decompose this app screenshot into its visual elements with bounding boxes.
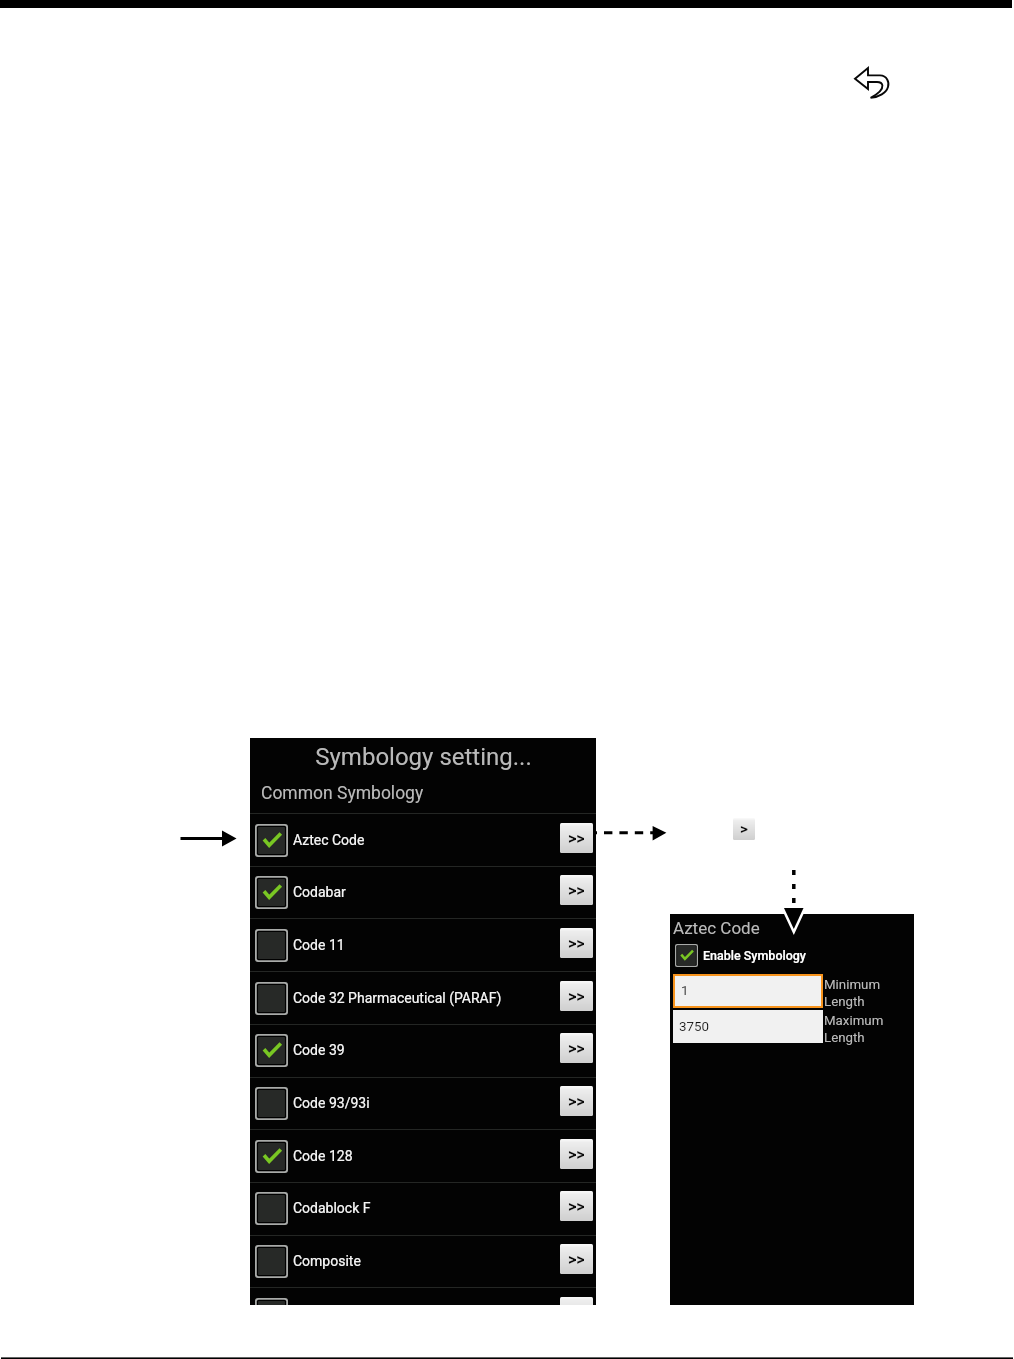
- button[interactable]: More settings: [560, 981, 593, 1011]
- staticText: Symbology setting...: [315, 743, 532, 771]
- button[interactable]: More settings: [560, 823, 593, 853]
- staticText: 3750: [679, 1019, 710, 1035]
- staticText: Codabar: [293, 884, 560, 900]
- button[interactable]: Aztec Code: [250, 814, 596, 866]
- button[interactable]: More settings: [733, 818, 755, 840]
- staticText: Codablock F: [293, 1200, 560, 1216]
- button[interactable]: More settings: [560, 1033, 593, 1063]
- staticText: 1: [681, 983, 689, 999]
- button[interactable]: Enable Symbology: [675, 944, 806, 967]
- button[interactable]: More settings: [560, 928, 593, 958]
- staticText: Code 93/93i: [293, 1095, 560, 1111]
- staticText: >>: [568, 1145, 585, 1164]
- button[interactable]: 1: [675, 976, 821, 1006]
- staticText: Code 39: [293, 1042, 560, 1058]
- staticText: Enable Symbology: [703, 948, 806, 963]
- staticText: >>: [568, 881, 585, 900]
- button[interactable]: More settings: [560, 1139, 593, 1169]
- button[interactable]: Composite: [250, 1235, 596, 1287]
- staticText: >>: [568, 1039, 585, 1058]
- button[interactable]: More settings: [560, 875, 593, 905]
- button[interactable]: Codablock F: [250, 1182, 596, 1234]
- button[interactable]: Code 93/93i: [250, 1077, 596, 1129]
- staticText: Aztec Code: [293, 832, 560, 848]
- button[interactable]: More settings: [560, 1191, 593, 1221]
- staticText: Code 128: [293, 1148, 560, 1164]
- button[interactable]: Code 39: [250, 1024, 596, 1076]
- button[interactable]: More settings: [560, 1086, 593, 1116]
- button[interactable]: Code 128: [250, 1130, 596, 1182]
- staticText: Common Symbology: [261, 783, 424, 804]
- button[interactable]: More settings: [560, 1244, 593, 1274]
- button[interactable]: Data Matrix: [250, 1288, 596, 1305]
- button[interactable]: Undo: [851, 64, 893, 102]
- staticText: Minimum Length: [824, 977, 881, 1009]
- staticText: >>: [568, 1197, 585, 1216]
- staticText: >>: [568, 1250, 585, 1269]
- button[interactable]: Codabar: [250, 866, 596, 918]
- staticText: >>: [568, 934, 585, 953]
- staticText: >>: [568, 1092, 585, 1111]
- staticText: Code 32 Pharmaceutical (PARAF): [293, 990, 560, 1006]
- staticText: >>: [568, 829, 585, 848]
- button[interactable]: Code 11: [250, 919, 596, 971]
- staticText: Maximum Length: [824, 1013, 884, 1045]
- button[interactable]: More settings: [560, 1297, 593, 1305]
- staticText: Aztec Code: [673, 918, 760, 938]
- staticText: Code 11: [293, 937, 560, 953]
- staticText: >: [740, 820, 748, 838]
- staticText: Composite: [293, 1253, 560, 1269]
- staticText: >>: [568, 987, 585, 1006]
- button[interactable]: 3750: [673, 1010, 823, 1043]
- button[interactable]: Code 32 Pharmaceutical (PARAF): [250, 972, 596, 1024]
